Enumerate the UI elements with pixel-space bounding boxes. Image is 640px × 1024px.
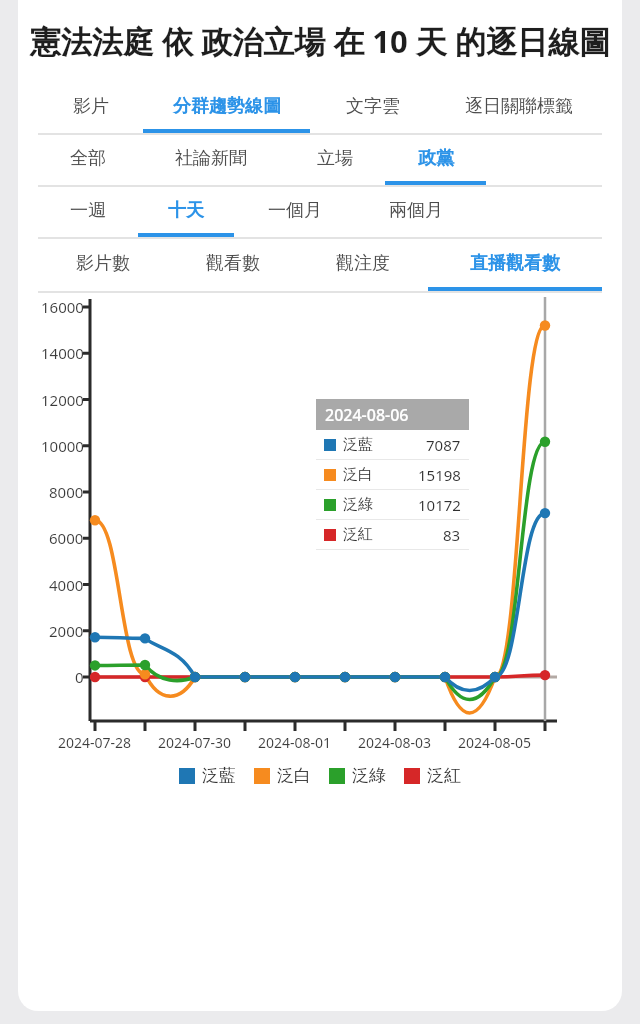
staticText: 7087 bbox=[426, 435, 461, 455]
staticText: 泛藍 bbox=[202, 765, 236, 786]
staticText: 83 bbox=[443, 525, 461, 545]
staticText: 10172 bbox=[418, 495, 461, 515]
staticText: 泛紅 bbox=[343, 525, 373, 544]
button[interactable]: 泛藍 bbox=[179, 765, 236, 786]
staticText: 2024-07-30 bbox=[158, 733, 232, 752]
staticText: 泛白 bbox=[277, 765, 311, 786]
staticText: 10000 bbox=[41, 436, 84, 456]
staticText: 觀看數 bbox=[206, 252, 260, 275]
button[interactable]: 全部 bbox=[38, 135, 138, 185]
staticText: 全部 bbox=[70, 147, 106, 170]
staticText: 一個月 bbox=[268, 199, 322, 222]
staticText: 政黨 bbox=[418, 147, 454, 170]
staticText: 分群趨勢線圖 bbox=[173, 95, 281, 118]
staticText: 15198 bbox=[418, 465, 461, 485]
button[interactable]: 泛紅 bbox=[404, 765, 461, 786]
staticText: 2024-07-28 bbox=[58, 733, 132, 752]
staticText: 2024-08-03 bbox=[358, 733, 432, 752]
staticText: 逐日關聯標籤 bbox=[465, 95, 573, 118]
staticText: 2024-08-06 bbox=[325, 404, 409, 426]
staticText: 直播觀看數 bbox=[470, 252, 560, 275]
staticText: 4000 bbox=[49, 575, 84, 595]
button[interactable]: 兩個月 bbox=[355, 187, 476, 237]
button[interactable]: 社論新聞 bbox=[138, 135, 284, 185]
button[interactable]: 一個月 bbox=[234, 187, 355, 237]
staticText: 泛綠 bbox=[343, 495, 373, 514]
button[interactable]: 政黨 bbox=[385, 135, 486, 185]
button[interactable]: 觀注度 bbox=[298, 239, 428, 291]
staticText: 憲法法庭 依 政治立場 在 10 天 的逐日線圖 bbox=[24, 20, 616, 62]
staticText: 2024-08-05 bbox=[458, 733, 532, 752]
staticText: 社論新聞 bbox=[175, 147, 247, 170]
staticText: 12000 bbox=[41, 390, 84, 410]
staticText: 立場 bbox=[317, 147, 353, 170]
staticText: 泛紅 bbox=[427, 765, 461, 786]
button[interactable]: 觀看數 bbox=[168, 239, 298, 291]
staticText: 觀注度 bbox=[336, 252, 390, 275]
staticText: 8000 bbox=[49, 482, 84, 502]
button[interactable]: 十天 bbox=[138, 187, 234, 237]
button[interactable]: 立場 bbox=[284, 135, 385, 185]
staticText: 影片 bbox=[73, 95, 109, 118]
staticText: 影片數 bbox=[76, 252, 130, 275]
button[interactable]: 泛綠 bbox=[329, 765, 386, 786]
staticText: 14000 bbox=[41, 343, 84, 363]
staticText: 兩個月 bbox=[389, 199, 443, 222]
staticText: 16000 bbox=[41, 297, 84, 317]
staticText: 十天 bbox=[168, 199, 204, 222]
staticText: 泛藍 bbox=[343, 435, 373, 454]
button[interactable]: 影片數 bbox=[38, 239, 168, 291]
staticText: 文字雲 bbox=[346, 95, 400, 118]
button[interactable]: 影片 bbox=[38, 84, 143, 133]
staticText: 2000 bbox=[49, 621, 84, 641]
staticText: 一週 bbox=[70, 199, 106, 222]
button[interactable]: 文字雲 bbox=[310, 84, 435, 133]
button[interactable]: 直播觀看數 bbox=[428, 239, 602, 291]
staticText: 2024-08-01 bbox=[258, 733, 332, 752]
staticText: 泛綠 bbox=[352, 765, 386, 786]
button[interactable]: 泛白 bbox=[254, 765, 311, 786]
staticText: 泛白 bbox=[343, 465, 373, 484]
button[interactable]: 分群趨勢線圖 bbox=[143, 84, 310, 133]
button[interactable]: 逐日關聯標籤 bbox=[435, 84, 602, 133]
staticText: 6000 bbox=[49, 528, 84, 548]
button[interactable]: 一週 bbox=[38, 187, 138, 237]
staticText: 0 bbox=[75, 667, 84, 687]
